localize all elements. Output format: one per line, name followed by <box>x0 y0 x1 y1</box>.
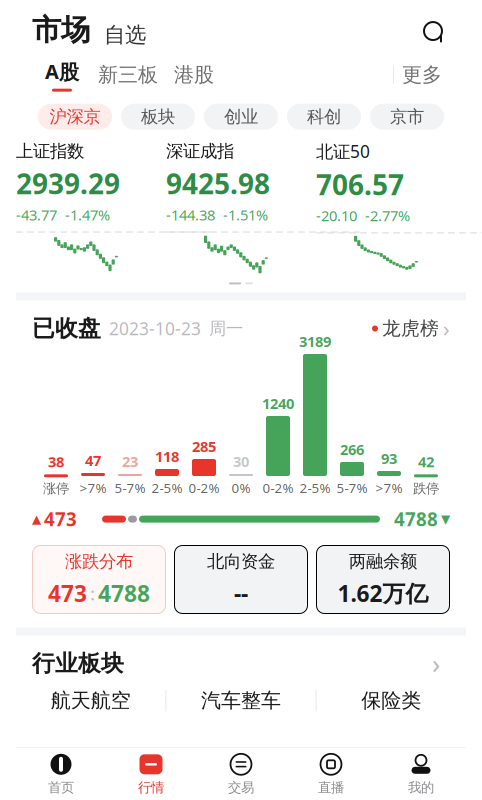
staticText: A股 <box>45 58 79 85</box>
button[interactable]: 上证指数 <box>16 141 156 276</box>
staticText: 港股 <box>174 63 214 87</box>
button[interactable]: 更多 <box>394 61 450 89</box>
button[interactable]: 北证50 <box>316 140 456 276</box>
staticText: ▼ <box>441 512 450 526</box>
staticText: 北证50 <box>316 140 370 163</box>
staticText: 4788 <box>394 507 438 531</box>
button[interactable]: 京市 <box>370 104 444 130</box>
staticText: 9425.98 <box>166 165 270 202</box>
button[interactable]: 深证成指 <box>166 141 306 276</box>
staticText: 涨停 <box>43 480 69 497</box>
staticText: 473 <box>44 507 77 531</box>
staticText: 0-2% <box>188 479 219 497</box>
button[interactable]: 市场 <box>32 12 90 48</box>
staticText: -20.10 <box>316 206 357 225</box>
button[interactable]: 板块 <box>121 104 195 130</box>
staticText: -- <box>234 578 248 608</box>
staticText: 行情 <box>138 779 164 796</box>
button[interactable]: 涨跌分布 <box>32 545 165 613</box>
staticText: 新三板 <box>98 63 158 87</box>
staticText: 保险类 <box>361 688 421 713</box>
staticText: 交易 <box>228 779 254 796</box>
button[interactable]: 我的 <box>376 751 466 797</box>
staticText: 473 <box>48 578 87 608</box>
staticText: 沪深京 <box>49 106 100 127</box>
staticText: 285 <box>192 436 216 456</box>
staticText: 直播 <box>318 779 344 796</box>
staticText: 42 <box>418 452 434 471</box>
staticText: 47 <box>85 450 101 470</box>
button[interactable]: 汽车整车 <box>166 683 316 717</box>
button[interactable]: 搜索 <box>420 18 450 48</box>
staticText: 2023-10-23 <box>109 317 201 340</box>
staticText: 周一 <box>209 318 243 339</box>
button[interactable]: 行情 <box>106 751 196 797</box>
staticText: › <box>443 314 450 343</box>
staticText: 板块 <box>141 106 175 127</box>
staticText: -1.51% <box>223 205 268 224</box>
staticText: 23 <box>122 451 138 471</box>
button[interactable]: 港股 <box>164 61 224 89</box>
staticText: 2-5% <box>299 479 330 497</box>
button[interactable]: 新三板 <box>92 61 164 89</box>
button[interactable]: 直播 <box>286 751 376 797</box>
staticText: 4788 <box>98 578 150 608</box>
staticText: 93 <box>381 448 397 468</box>
button[interactable]: 自选 <box>104 22 146 48</box>
button[interactable]: 创业 <box>204 104 278 130</box>
staticText: 5-7% <box>336 479 367 497</box>
staticText: 266 <box>340 439 364 459</box>
staticText: 市场 <box>32 12 90 48</box>
button[interactable]: 查看全部行业板块 <box>422 649 450 677</box>
staticText: 2-5% <box>151 479 182 497</box>
staticText: -1.47% <box>65 205 110 224</box>
button[interactable]: 沪深京 <box>38 104 112 130</box>
staticText: 2939.29 <box>16 165 120 202</box>
staticText: 5-7% <box>114 479 145 497</box>
button[interactable]: 交易 <box>196 751 286 797</box>
staticText: ▲ <box>32 512 41 526</box>
staticText: 更多 <box>402 63 442 87</box>
staticText: 30 <box>233 451 249 471</box>
staticText: 706.57 <box>316 166 404 203</box>
staticText: -43.77 <box>16 205 57 224</box>
staticText: >7% <box>79 479 106 497</box>
button[interactable]: 两融余额 <box>316 545 449 613</box>
staticText: -2.77% <box>365 206 410 225</box>
button[interactable]: 北向资金 <box>174 545 307 613</box>
button[interactable]: 首页 <box>16 751 106 797</box>
staticText: 汽车整车 <box>201 688 281 713</box>
staticText: 118 <box>155 446 179 466</box>
staticText: 自选 <box>104 22 146 48</box>
staticText: 涨跌分布 <box>65 551 133 572</box>
staticText: 科创 <box>307 106 341 127</box>
staticText: 1240 <box>262 393 294 413</box>
staticText: >7% <box>375 479 402 497</box>
staticText: 京市 <box>390 106 424 127</box>
staticText: 1.62万亿 <box>337 578 428 608</box>
staticText: 北向资金 <box>207 551 275 572</box>
staticText: 我的 <box>408 779 434 796</box>
staticText: 首页 <box>48 779 74 796</box>
staticText: 航天航空 <box>51 688 131 713</box>
staticText: 38 <box>48 452 64 471</box>
button[interactable]: 航天航空 <box>16 683 165 717</box>
staticText: : <box>90 581 95 605</box>
staticText: 已收盘 <box>32 315 101 342</box>
staticText: 行业板块 <box>32 650 124 677</box>
button[interactable]: 科创 <box>287 104 361 130</box>
staticText: -144.38 <box>166 205 215 224</box>
staticText: 两融余额 <box>349 551 417 572</box>
staticText: 龙虎榜 <box>382 317 439 340</box>
staticText: 上证指数 <box>16 141 84 162</box>
staticText: 0-2% <box>262 479 293 497</box>
staticText: › <box>432 646 440 681</box>
button[interactable]: 保险类 <box>317 683 466 717</box>
staticText: 跌停 <box>413 480 439 497</box>
staticText: 创业 <box>224 106 258 127</box>
button[interactable]: 龙虎榜 <box>372 314 450 343</box>
staticText: 0% <box>231 479 250 497</box>
staticText: 深证成指 <box>166 141 234 162</box>
staticText: 3189 <box>299 331 331 351</box>
